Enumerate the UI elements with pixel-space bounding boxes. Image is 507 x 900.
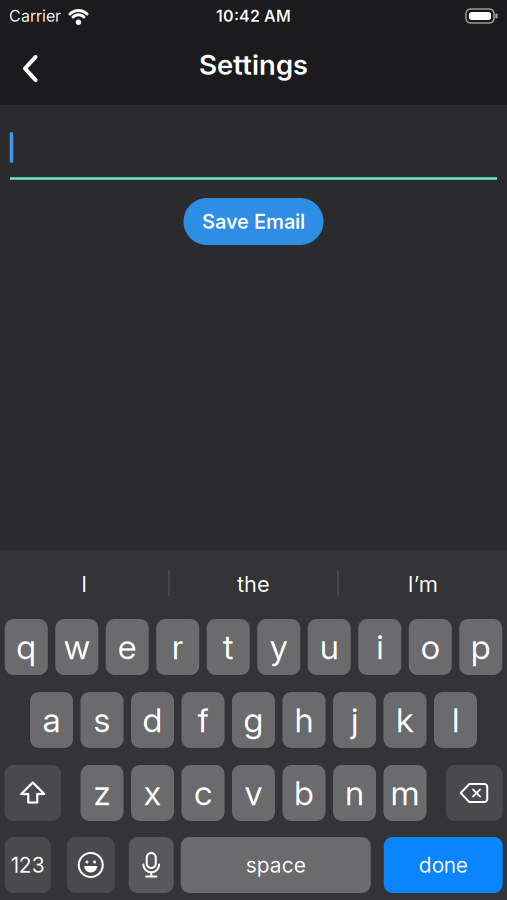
staticText: c — [194, 772, 212, 813]
staticText: I’m — [408, 571, 438, 597]
staticText: u — [320, 626, 339, 667]
staticText: o — [421, 626, 440, 667]
staticText: x — [143, 772, 161, 813]
button[interactable]: I’m — [338, 549, 507, 611]
staticText: v — [244, 772, 262, 813]
staticText: done — [419, 852, 468, 878]
staticText: b — [294, 772, 314, 813]
button[interactable]: v — [232, 765, 275, 821]
button[interactable]: u — [308, 619, 351, 675]
staticText: w — [64, 626, 90, 667]
staticText: t — [223, 626, 234, 667]
button[interactable]: r — [156, 619, 199, 675]
button[interactable]: n — [333, 765, 376, 821]
staticText: d — [142, 699, 162, 740]
button[interactable]: the — [169, 549, 337, 611]
staticText: m — [390, 772, 419, 813]
button[interactable]: f — [181, 692, 224, 748]
staticText: s — [93, 699, 110, 740]
button[interactable]: h — [282, 692, 325, 748]
staticText: q — [16, 626, 36, 667]
staticText: y — [270, 626, 288, 667]
staticText: space — [246, 852, 306, 878]
staticText: l — [452, 699, 459, 740]
button[interactable]: Save Email — [183, 198, 323, 245]
button[interactable]: I — [0, 549, 168, 611]
staticText: Settings — [199, 48, 308, 81]
button[interactable]: q — [5, 619, 48, 675]
staticText: g — [243, 699, 263, 740]
button[interactable]: space — [181, 837, 371, 893]
staticText: the — [237, 571, 270, 597]
staticText: h — [294, 699, 313, 740]
staticText: I — [81, 571, 87, 597]
button[interactable]: i — [358, 619, 401, 675]
staticText: Carrier — [9, 6, 61, 26]
staticText: 123 — [11, 852, 45, 878]
button[interactable]: 123 — [5, 837, 51, 893]
staticText: k — [396, 699, 414, 740]
staticText: e — [118, 626, 137, 667]
button[interactable]: done — [384, 837, 503, 893]
staticText: p — [471, 626, 491, 667]
button[interactable]: s — [80, 692, 123, 748]
button[interactable]: w — [55, 619, 98, 675]
staticText: i — [376, 626, 383, 667]
button[interactable]: k — [383, 692, 426, 748]
button[interactable]: p — [459, 619, 502, 675]
staticText: 10:42 AM — [216, 6, 291, 26]
button[interactable]: Shift — [4, 765, 61, 821]
staticText: n — [345, 772, 364, 813]
button[interactable]: Delete — [446, 765, 502, 821]
button[interactable]: l — [434, 692, 477, 748]
button[interactable]: b — [282, 765, 325, 821]
staticText: a — [42, 699, 60, 740]
button[interactable]: c — [181, 765, 224, 821]
button[interactable]: j — [333, 692, 376, 748]
button[interactable]: m — [383, 765, 426, 821]
button[interactable]: Email — [0, 105, 507, 181]
button[interactable]: Emoji — [67, 837, 115, 893]
button[interactable]: z — [80, 765, 123, 821]
button[interactable]: e — [106, 619, 149, 675]
button[interactable]: g — [232, 692, 275, 748]
button[interactable]: o — [409, 619, 452, 675]
button[interactable]: a — [30, 692, 73, 748]
staticText: j — [351, 699, 358, 740]
button[interactable]: Back — [0, 35, 38, 101]
button[interactable]: y — [257, 619, 300, 675]
button[interactable]: t — [207, 619, 250, 675]
staticText: z — [93, 772, 110, 813]
button[interactable]: Dictate — [129, 837, 174, 893]
staticText: Save Email — [202, 209, 305, 234]
staticText: f — [197, 699, 208, 740]
button[interactable]: x — [131, 765, 174, 821]
staticText: r — [172, 626, 184, 667]
button[interactable]: d — [131, 692, 174, 748]
